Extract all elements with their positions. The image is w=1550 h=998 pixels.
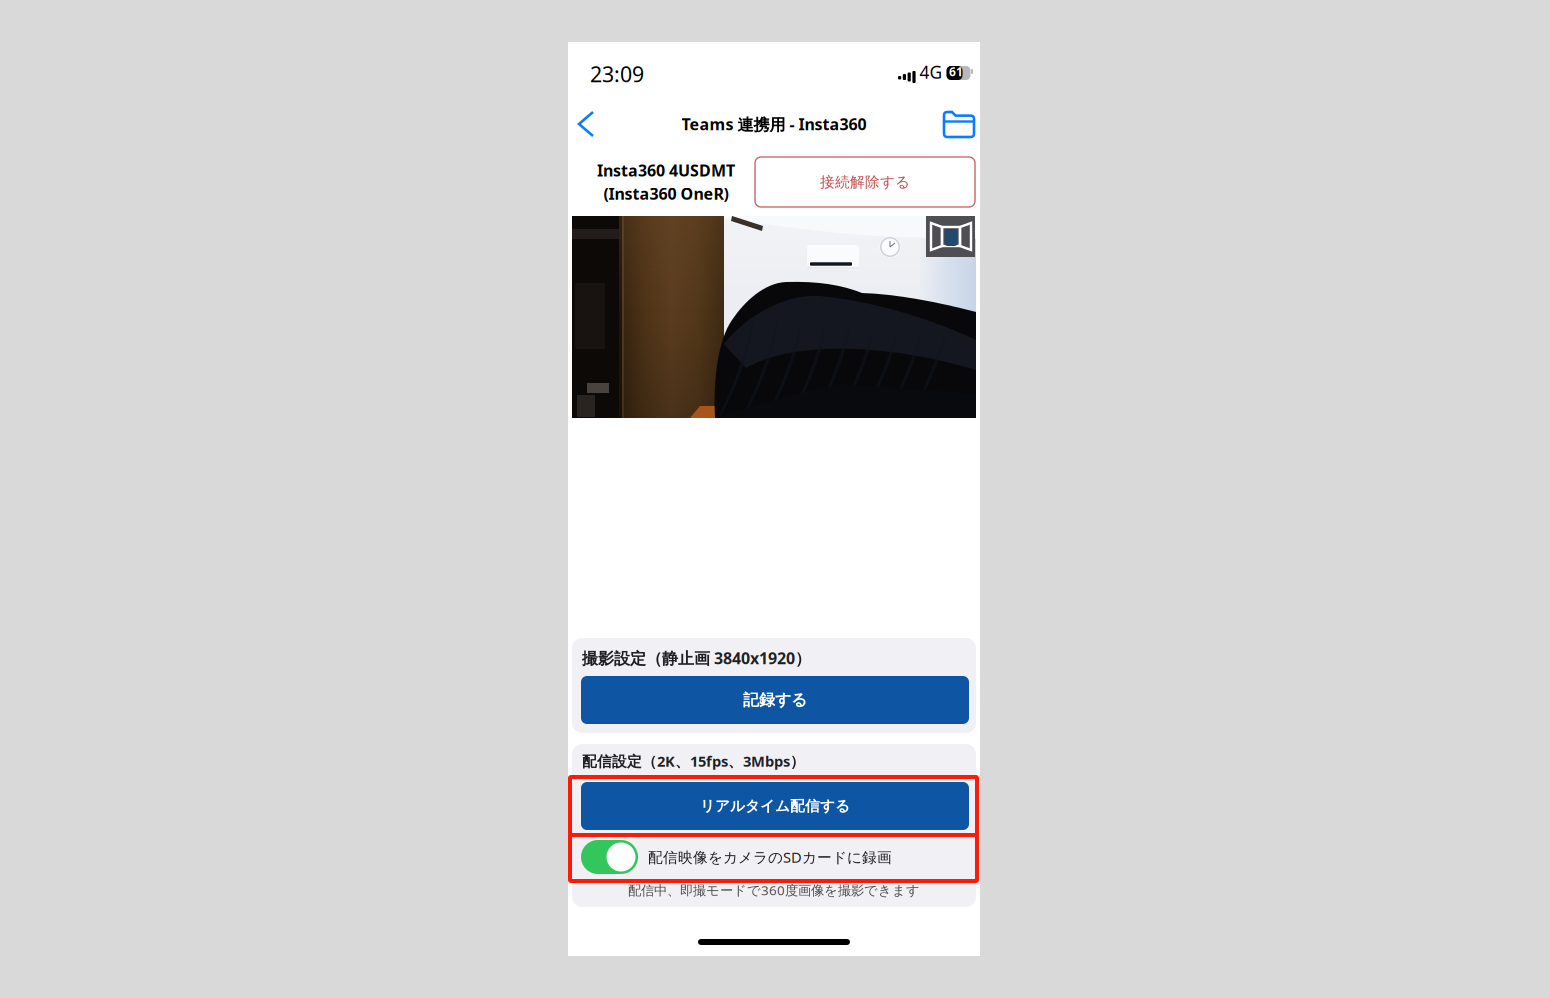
staticText: 23:09	[590, 60, 644, 88]
staticText: 記録する	[743, 690, 807, 710]
staticText: 配信映像をカメラのSDカードに録画	[648, 847, 892, 867]
staticText: Insta360 4USDMT	[597, 160, 735, 181]
staticText: 4G	[919, 60, 942, 83]
button[interactable]: Browse files	[937, 101, 981, 149]
staticText: 接続解除する	[820, 173, 910, 191]
staticText: 撮影設定（静止画 3840x1920）	[582, 647, 811, 669]
button[interactable]: Change view mode	[926, 216, 975, 257]
button[interactable]: 接続解除する	[755, 157, 975, 207]
staticText: 配信設定（2K、15fps、3Mbps）	[582, 751, 805, 771]
button[interactable]: リアルタイム配信する	[581, 782, 969, 830]
staticText: 配信中、即撮モードで360度画像を撮影できます	[628, 881, 920, 899]
staticText: 61	[949, 63, 963, 79]
staticText: リアルタイム配信する	[700, 797, 850, 815]
button[interactable]: 記録する	[581, 676, 969, 724]
button[interactable]: Back	[570, 100, 614, 148]
button[interactable]: 配信映像をカメラのSDカードに録画	[581, 837, 977, 877]
staticText: (Insta360 OneR)	[603, 183, 728, 204]
staticText: Teams 連携用 - Insta360	[681, 113, 866, 135]
